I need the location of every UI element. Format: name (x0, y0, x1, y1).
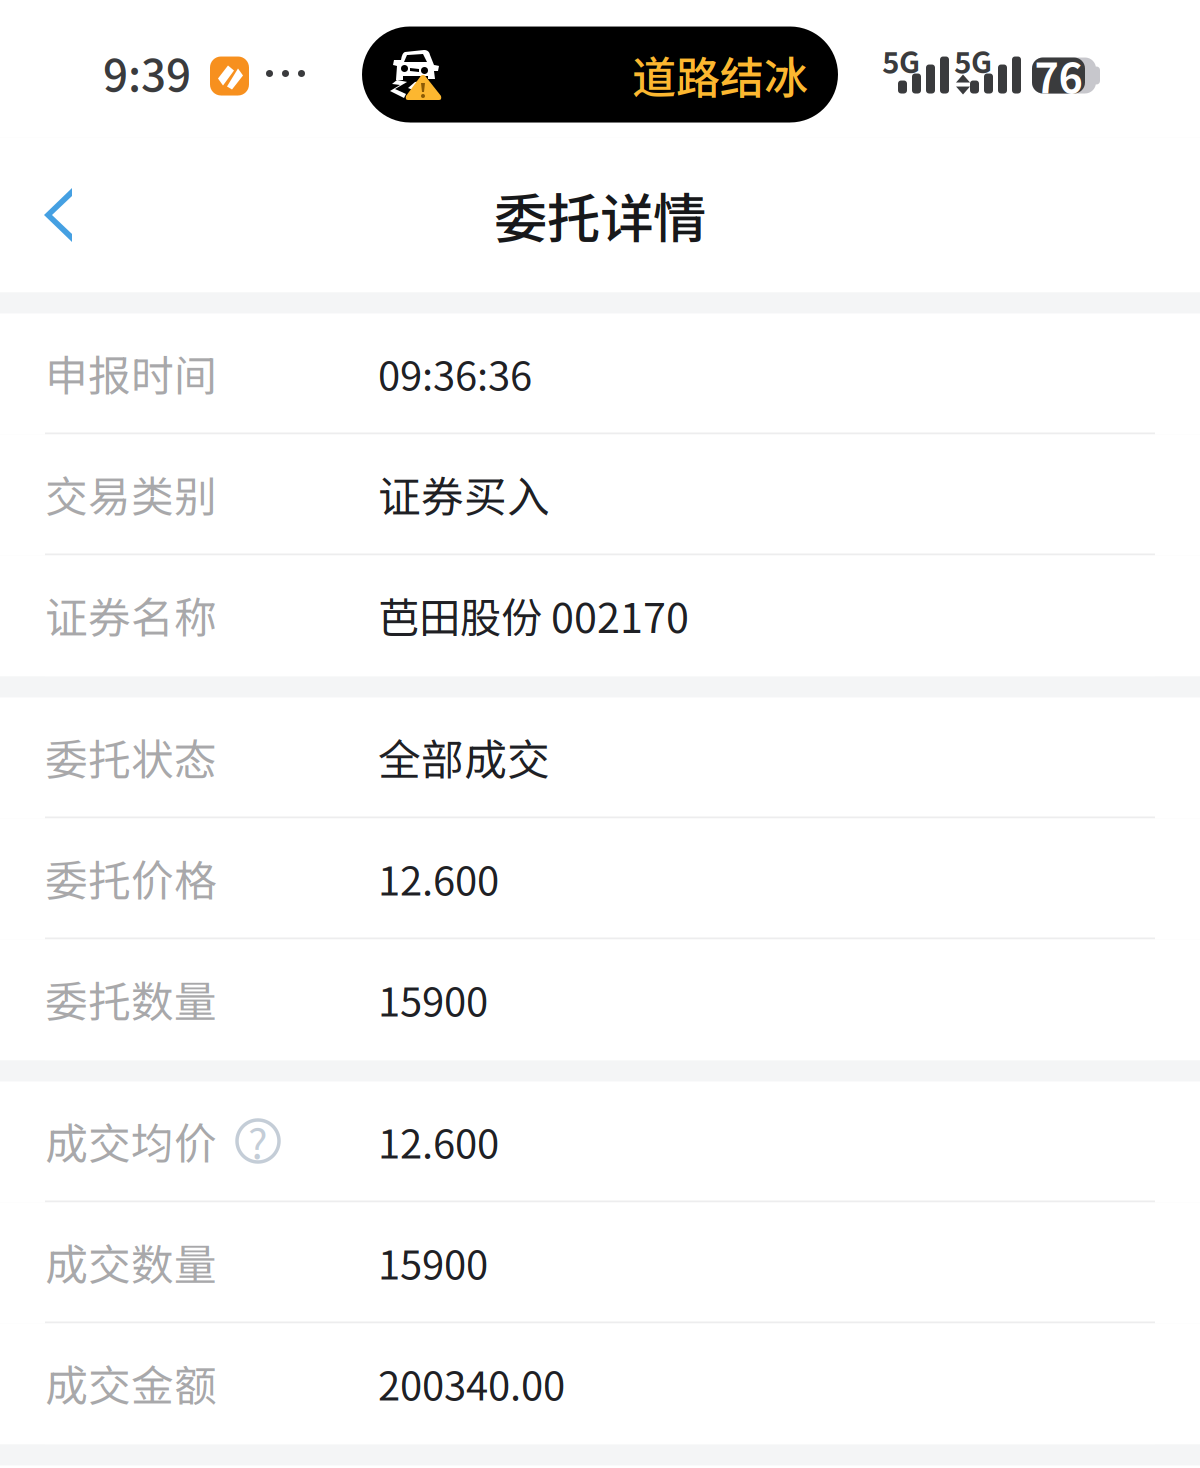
staticText: 成交均价 (45, 1110, 217, 1172)
staticText: 12.600 (378, 1112, 499, 1170)
staticText: 芭田股份 002170 (378, 585, 689, 645)
staticText: 5G (882, 39, 920, 82)
staticText: 成交数量 (45, 1231, 217, 1293)
staticText: 申报时间 (45, 342, 217, 404)
staticText: 委托数量 (45, 968, 217, 1030)
staticText: 15900 (378, 1233, 488, 1291)
staticText: 委托价格 (45, 847, 217, 909)
staticText: 15900 (378, 970, 488, 1028)
staticText: 委托详情 (494, 176, 706, 254)
staticText: 证券名称 (45, 584, 217, 646)
staticText: 76 (1034, 46, 1082, 105)
staticText: 9:39 (103, 41, 191, 104)
staticText: 成交金额 (45, 1352, 217, 1414)
staticText: 委托状态 (45, 726, 217, 788)
staticText: 5G (954, 39, 992, 82)
staticText: 交易类别 (45, 463, 217, 525)
staticText: 道路结冰 (632, 43, 808, 106)
staticText: 09:36:36 (378, 344, 532, 402)
staticText: 全部成交 (378, 726, 550, 788)
staticText: 证券买入 (378, 463, 550, 525)
button[interactable]: Back (0, 137, 163, 292)
staticText: ? (248, 1111, 268, 1171)
staticText: 12.600 (378, 849, 499, 907)
staticText: 200340.00 (378, 1354, 565, 1412)
